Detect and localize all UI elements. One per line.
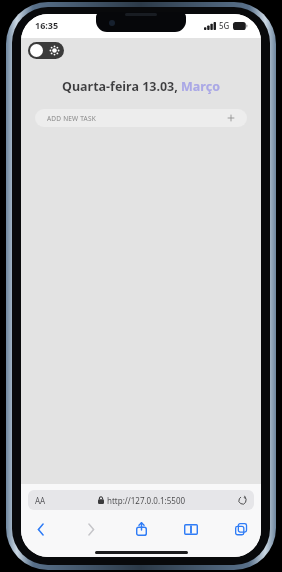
button[interactable]: Bookmarks (180, 518, 202, 540)
button[interactable]: Forward (80, 518, 102, 540)
staticText: Quarta-feira 13.03, Março (62, 78, 220, 95)
button[interactable]: Toggle theme (28, 42, 64, 59)
staticText: http://127.0.0.1:5500 (107, 495, 186, 506)
staticText: 5G (219, 20, 230, 31)
button[interactable]: ADD NEW TASK (35, 109, 247, 127)
staticText: 16:35 (35, 19, 59, 31)
other: Reload (238, 496, 247, 505)
button[interactable]: Share (130, 518, 152, 540)
button[interactable]: Back (30, 518, 52, 540)
staticText: AA (35, 495, 46, 506)
button[interactable]: Address bar (28, 490, 254, 510)
button[interactable]: Tabs (230, 518, 252, 540)
staticText: ADD NEW TASK (47, 114, 96, 123)
